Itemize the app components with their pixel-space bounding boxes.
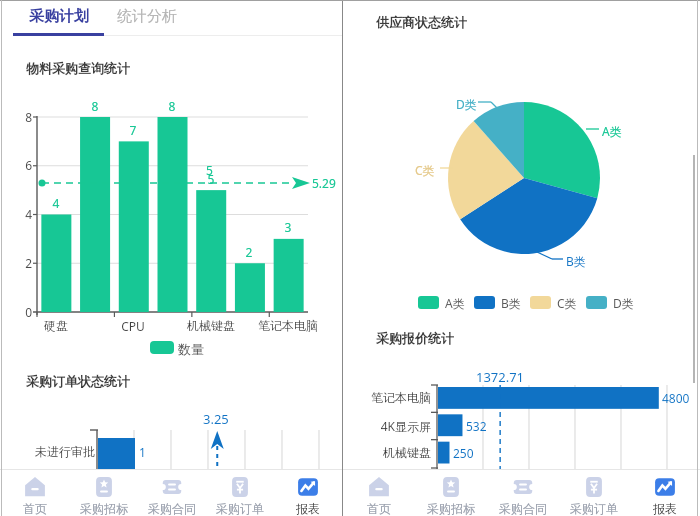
- staticText: 采购报价统计: [376, 330, 454, 346]
- staticText: 2: [234, 244, 264, 260]
- staticText: 首页: [367, 501, 391, 516]
- staticText: 1372.71: [463, 368, 537, 386]
- staticText: 1: [139, 444, 146, 460]
- staticText: 7: [118, 122, 148, 138]
- staticText: 8: [157, 98, 187, 114]
- button[interactable]: 采购合同: [487, 469, 558, 516]
- staticText: 采购计划: [29, 7, 89, 26]
- staticText: 2: [12, 255, 32, 271]
- staticText: 0: [12, 304, 32, 320]
- staticText: 采购合同: [148, 501, 196, 516]
- button[interactable]: 首页: [0, 469, 69, 516]
- staticText: 采购招标: [80, 501, 128, 516]
- staticText: 3: [273, 219, 303, 235]
- button[interactable]: 采购订单: [206, 469, 274, 516]
- staticText: 数量: [178, 341, 204, 357]
- staticText: 物料采购查询统计: [26, 60, 130, 76]
- staticText: 笔记本电脑: [359, 390, 431, 405]
- button[interactable]: 采购合同: [138, 469, 206, 516]
- button[interactable]: 报表: [629, 469, 700, 516]
- staticText: 250: [453, 445, 474, 461]
- staticText: 4: [12, 206, 32, 222]
- staticText: 5: [206, 162, 213, 178]
- staticText: B类: [566, 253, 586, 269]
- staticText: CPU: [95, 318, 171, 334]
- staticText: 4K显示屏: [359, 418, 431, 434]
- staticText: 机械键盘: [359, 445, 431, 460]
- staticText: B类: [501, 295, 521, 311]
- staticText: 笔记本电脑: [250, 318, 326, 333]
- staticText: A类: [445, 295, 465, 311]
- staticText: 6: [12, 157, 32, 173]
- staticText: 采购订单状态统计: [26, 373, 130, 389]
- button[interactable]: 报表: [274, 469, 342, 516]
- staticText: 供应商状态统计: [376, 14, 467, 30]
- staticText: 机械键盘: [173, 318, 249, 333]
- button[interactable]: 首页: [343, 469, 415, 516]
- staticText: 8: [80, 98, 110, 114]
- staticText: 532: [466, 418, 487, 434]
- staticText: D类: [456, 96, 477, 112]
- staticText: 报表: [653, 501, 677, 516]
- staticText: C类: [415, 162, 435, 178]
- staticText: 首页: [23, 501, 47, 516]
- staticText: 5: [196, 171, 226, 187]
- staticText: 采购招标: [427, 501, 475, 516]
- staticText: 采购订单: [216, 501, 264, 516]
- staticText: D类: [613, 295, 634, 311]
- staticText: 统计分析: [117, 7, 177, 26]
- staticText: 未进行审批: [35, 444, 95, 459]
- staticText: 4800: [662, 390, 690, 406]
- staticText: 8: [12, 109, 32, 125]
- button[interactable]: 采购招标: [69, 469, 138, 516]
- button[interactable]: 统计分析: [104, 0, 189, 33]
- staticText: 硬盘: [18, 318, 94, 333]
- staticText: 采购订单: [570, 501, 618, 516]
- staticText: 3.25: [203, 410, 229, 428]
- button[interactable]: 采购计划: [13, 0, 104, 33]
- staticText: 5.29: [312, 175, 336, 191]
- button[interactable]: 采购订单: [558, 469, 629, 516]
- button[interactable]: 采购招标: [415, 469, 487, 516]
- staticText: 4: [41, 195, 71, 211]
- staticText: A类: [602, 123, 622, 139]
- staticText: 报表: [296, 501, 320, 516]
- staticText: C类: [557, 295, 577, 311]
- staticText: 采购合同: [499, 501, 547, 516]
